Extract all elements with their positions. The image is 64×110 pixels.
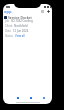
button[interactable]: Home (15, 95, 21, 101)
staticText: Date (5, 29, 12, 33)
staticText: Service Docket (8, 15, 32, 19)
staticText: SD-1042 Cooling (11, 19, 33, 23)
staticText: Job (5, 19, 10, 23)
staticText: Client (5, 24, 13, 28)
button[interactable]: View all (15, 34, 25, 38)
staticText: Status (5, 34, 14, 38)
button[interactable]: Docket (28, 95, 34, 101)
button[interactable]: Service Docket (4, 15, 33, 19)
button[interactable]: appy (4, 9, 13, 14)
staticText: appy (4, 9, 13, 14)
button[interactable]: Menu (40, 9, 45, 14)
staticText: 12 Jun 2024 (13, 29, 29, 33)
button[interactable]: Add (46, 9, 51, 14)
staticText: View all (15, 34, 25, 38)
staticText: Northfield (14, 24, 28, 28)
button[interactable]: Profile (41, 95, 47, 101)
